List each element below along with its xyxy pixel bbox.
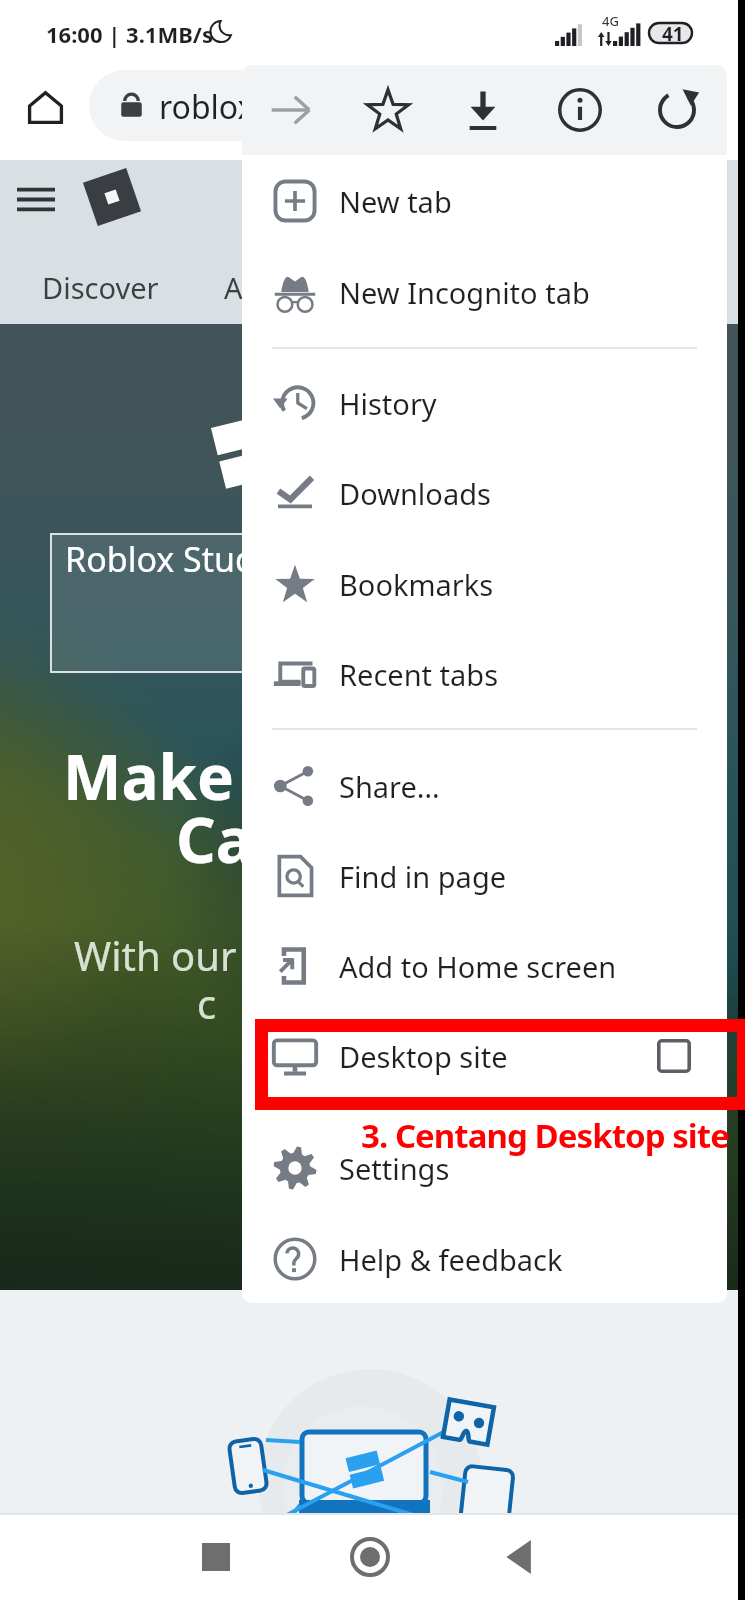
staticText: New Incognito tab <box>339 273 590 312</box>
staticText: Help & feedback <box>339 1240 563 1279</box>
button[interactable]: roblox.com <box>89 70 659 141</box>
staticText: Make <box>63 734 235 818</box>
staticText: c <box>197 976 217 1030</box>
button[interactable]: Recent apps <box>186 1513 246 1600</box>
staticText: Roblox Studio <box>65 536 286 582</box>
staticText: Add to Home screen <box>339 947 617 986</box>
button[interactable]: Site menu <box>17 182 55 220</box>
staticText: 41 <box>662 21 684 47</box>
staticText: Settings <box>339 1149 450 1188</box>
staticText: Recent tabs <box>339 655 499 694</box>
button[interactable]: New Incognito tab <box>242 247 727 337</box>
button[interactable]: Help & feedback <box>242 1214 727 1303</box>
button[interactable]: Desktop site <box>242 1011 727 1101</box>
button[interactable]: Home <box>27 89 64 126</box>
button[interactable]: Settings <box>242 1123 727 1213</box>
staticText: With our <box>74 928 237 982</box>
button[interactable]: Bookmark this page <box>350 65 426 155</box>
button[interactable]: History <box>242 358 727 448</box>
staticText: 16:00 | 3.1MB/s <box>46 19 213 49</box>
staticText: Ca <box>176 797 253 881</box>
staticText: Find in page <box>339 857 507 896</box>
button[interactable]: New tab <box>242 156 727 246</box>
button[interactable]: Back <box>490 1513 550 1600</box>
staticText: roblox.com <box>159 85 328 129</box>
button[interactable]: Page info <box>542 65 618 155</box>
staticText: 3. Centang Desktop site <box>361 1113 729 1158</box>
button[interactable]: Share… <box>242 741 727 831</box>
button[interactable]: Bookmarks <box>242 539 727 629</box>
staticText: Bookmarks <box>339 565 494 604</box>
button[interactable]: Add to Home screen <box>242 921 727 1011</box>
staticText: 4G <box>602 12 619 30</box>
button[interactable]: Download page <box>445 65 521 155</box>
button[interactable]: Find in page <box>242 831 727 921</box>
staticText: Discover <box>42 268 159 307</box>
staticText: Share… <box>339 767 440 806</box>
button[interactable]: Forward <box>253 65 329 155</box>
staticText: New tab <box>339 182 452 221</box>
button[interactable]: Home <box>340 1513 400 1600</box>
staticText: Desktop site <box>339 1037 508 1076</box>
button[interactable]: Recent tabs <box>242 629 727 719</box>
button[interactable]: Reload <box>639 65 715 155</box>
button[interactable]: Downloads <box>242 448 727 538</box>
staticText: History <box>339 384 437 423</box>
staticText: Downloads <box>339 474 491 513</box>
staticText: A <box>224 268 243 307</box>
